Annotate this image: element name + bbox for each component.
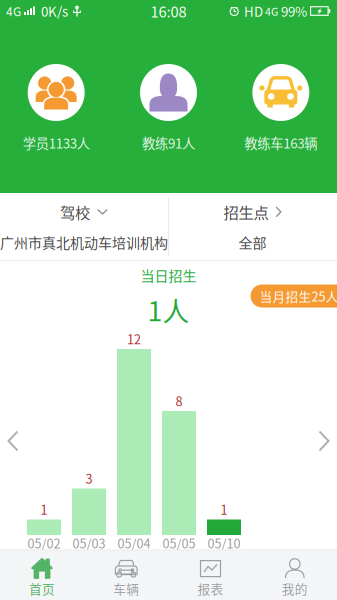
- staticText: 教练91人: [142, 133, 195, 152]
- staticText: 1: [40, 500, 47, 518]
- button[interactable]: 首页: [0, 550, 84, 600]
- staticText: 3: [85, 469, 92, 487]
- staticText: 车辆: [113, 579, 139, 598]
- staticText: 12: [127, 330, 141, 348]
- button[interactable]: 招生点: [168, 193, 337, 260]
- staticText: 0K/s: [41, 1, 68, 21]
- staticText: HD: [244, 1, 263, 21]
- button[interactable]: 报表: [168, 550, 253, 600]
- staticText: 05/10: [207, 534, 240, 552]
- staticText: 招生点: [223, 201, 268, 223]
- staticText: 4G: [6, 2, 21, 20]
- staticText: 报表: [197, 579, 223, 598]
- button[interactable]: 当月招生25人: [250, 284, 337, 307]
- button[interactable]: 教练91人: [112, 64, 225, 152]
- staticText: 驾校: [60, 201, 90, 223]
- button[interactable]: 车辆: [84, 550, 168, 600]
- staticText: 首页: [29, 579, 55, 598]
- staticText: 05/02: [27, 534, 60, 552]
- staticText: 16:08: [150, 0, 186, 22]
- button[interactable]: 驾校: [0, 193, 168, 260]
- button[interactable]: Previous week: [0, 419, 26, 463]
- staticText: 学员1133人: [23, 133, 90, 152]
- staticText: 1人: [147, 290, 189, 329]
- staticText: 广州市真北机动车培训机构: [0, 232, 168, 252]
- staticText: 99%: [281, 1, 307, 21]
- staticText: 教练车163辆: [244, 133, 317, 152]
- staticText: 4G: [265, 3, 278, 19]
- staticText: 1: [220, 500, 227, 518]
- button[interactable]: 我的: [253, 550, 337, 600]
- button[interactable]: Next week: [311, 419, 337, 463]
- staticText: 我的: [282, 579, 308, 598]
- button[interactable]: 教练车163辆: [225, 64, 337, 152]
- staticText: 05/03: [72, 534, 105, 552]
- staticText: 当日招生: [140, 265, 196, 285]
- button[interactable]: 学员1133人: [0, 64, 112, 152]
- staticText: 05/05: [162, 534, 195, 552]
- staticText: 当月招生25人: [259, 287, 337, 305]
- staticText: 05/04: [117, 534, 150, 552]
- staticText: 8: [175, 392, 182, 410]
- staticText: 全部: [238, 232, 266, 252]
